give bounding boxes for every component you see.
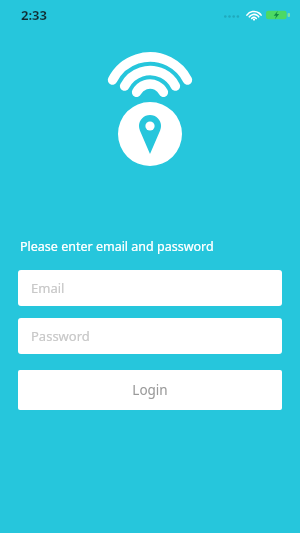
staticText: Please enter email and password <box>20 238 214 255</box>
button[interactable]: Email <box>18 270 282 306</box>
staticText: 2:33 <box>21 6 47 24</box>
button[interactable]: Password <box>18 318 282 354</box>
staticText: Password <box>31 327 90 345</box>
staticText: Login <box>132 381 168 399</box>
staticText: Email <box>31 279 65 297</box>
button[interactable]: Login <box>18 370 282 410</box>
